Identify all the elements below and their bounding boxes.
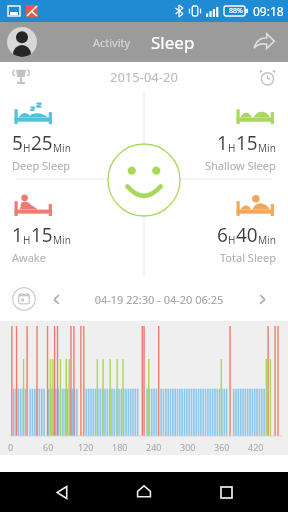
staticText: H [228, 233, 236, 247]
staticText: 5 [12, 130, 23, 156]
staticText: 1 [217, 130, 228, 156]
staticText: Total Sleep [220, 250, 276, 265]
button[interactable]: Profile [7, 27, 37, 57]
staticText: 60 [43, 441, 54, 453]
button[interactable]: Share [250, 28, 278, 56]
staticText: Deep Sleep [12, 158, 71, 173]
staticText: H [228, 141, 236, 155]
button[interactable]: Alarm [254, 64, 280, 90]
staticText: 360 [214, 441, 230, 453]
button[interactable]: Back [42, 472, 82, 512]
staticText: 40 [236, 222, 258, 248]
staticText: Awake [12, 250, 46, 265]
staticText: Min [53, 233, 71, 247]
staticText: Min [258, 141, 276, 155]
button[interactable]: Next [248, 287, 276, 311]
staticText: Shallow Sleep [205, 158, 276, 173]
staticText: 15 [31, 222, 53, 248]
button[interactable]: 6 [144, 184, 288, 277]
button[interactable]: Previous [42, 287, 70, 311]
staticText: 09:18 [253, 3, 284, 19]
staticText: Sleep [151, 31, 195, 54]
staticText: 1 [12, 222, 23, 248]
button[interactable]: Activity [87, 31, 137, 54]
staticText: H [23, 141, 31, 155]
staticText: 120 [78, 441, 94, 453]
button[interactable]: Recents [206, 472, 246, 512]
button[interactable]: Calendar [12, 287, 36, 311]
staticText: 2015-04-20 [110, 68, 178, 86]
staticText: 240 [146, 441, 162, 453]
staticText: 15 [236, 130, 258, 156]
button[interactable]: 1 [144, 92, 288, 184]
staticText: Min [258, 233, 276, 247]
staticText: 180 [112, 441, 128, 453]
staticText: 88% [229, 6, 243, 16]
staticText: 420 [248, 441, 264, 453]
staticText: 25 [31, 130, 53, 156]
button[interactable]: 5 [0, 92, 144, 184]
staticText: 0 [8, 441, 14, 453]
staticText: 04-19 22:30 - 04-20 06:25 [70, 292, 248, 307]
button[interactable]: Home [124, 472, 164, 512]
button[interactable]: Previous [42, 287, 276, 311]
staticText: 300 [180, 441, 196, 453]
button[interactable]: Sleep [145, 29, 201, 56]
staticText: H [23, 233, 31, 247]
button[interactable]: 1 [0, 184, 144, 277]
staticText: 6 [217, 222, 228, 248]
staticText: Min [53, 141, 71, 155]
button[interactable]: Achievements [8, 64, 34, 90]
staticText: Activity [93, 35, 131, 50]
